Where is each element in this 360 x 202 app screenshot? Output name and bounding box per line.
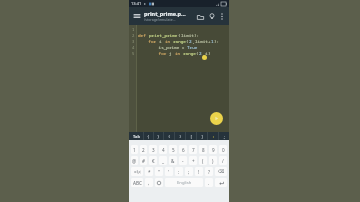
staticText: for xyxy=(138,50,169,56)
button[interactable]: € xyxy=(149,156,157,165)
staticText: , xyxy=(192,38,195,44)
button[interactable]: ⌫ xyxy=(215,167,227,176)
staticText: 5 xyxy=(132,51,135,56)
staticText: i xyxy=(159,38,165,44)
staticText: 2 xyxy=(199,50,202,56)
button[interactable]: # xyxy=(140,156,147,165)
button[interactable]: Hints xyxy=(206,11,217,22)
staticText: 1 xyxy=(211,38,214,44)
button[interactable]: Run xyxy=(210,112,223,125)
button[interactable]: - xyxy=(179,156,187,165)
button[interactable]: 2 xyxy=(140,145,147,154)
staticText: ] xyxy=(201,134,204,139)
button[interactable]: More options xyxy=(217,12,226,21)
button[interactable]: ; xyxy=(185,167,193,176)
staticText: , xyxy=(148,180,150,186)
button[interactable]: @ xyxy=(131,156,138,165)
staticText: ; xyxy=(223,134,226,139)
staticText: 8 xyxy=(202,147,205,153)
button[interactable]: : xyxy=(208,132,218,140)
staticText: limit xyxy=(181,32,194,38)
button[interactable]: ! xyxy=(195,167,203,176)
button[interactable]: ' xyxy=(165,167,173,176)
staticText: + xyxy=(192,158,195,164)
button[interactable]: Enter xyxy=(215,178,227,187)
button[interactable]: ; xyxy=(219,132,229,140)
button[interactable]: [ xyxy=(186,132,196,140)
staticText: range xyxy=(183,50,196,56)
staticText: , xyxy=(202,50,205,56)
staticText: ): xyxy=(214,38,220,44)
button[interactable]: 5 xyxy=(169,145,177,154)
button[interactable]: ( xyxy=(199,156,207,165)
staticText: 2 xyxy=(132,33,135,38)
staticText: @ xyxy=(132,158,137,164)
staticText: + xyxy=(208,38,211,44)
staticText: { xyxy=(147,134,150,139)
button[interactable]: ] xyxy=(197,132,207,140)
button[interactable]: / xyxy=(219,156,227,165)
button[interactable]: ) xyxy=(209,156,217,165)
staticText: English xyxy=(177,180,192,186)
button[interactable]: 1 xyxy=(131,145,138,154)
button[interactable]: 8 xyxy=(199,145,207,154)
staticText: ): xyxy=(194,32,200,38)
staticText: 9 xyxy=(212,147,215,153)
staticText: ; xyxy=(188,169,190,175)
staticText: for xyxy=(138,38,159,44)
staticText: ( xyxy=(168,134,171,139)
staticText: is_prime = xyxy=(138,44,187,50)
staticText: € xyxy=(152,158,155,164)
button[interactable]: : xyxy=(175,167,183,176)
button[interactable]: 0 xyxy=(219,145,227,154)
button[interactable]: _ xyxy=(159,156,167,165)
button[interactable]: . xyxy=(205,178,213,187)
staticText: 6 xyxy=(182,147,185,153)
staticText: i xyxy=(205,50,208,56)
button[interactable]: Emoji xyxy=(155,178,163,187)
button[interactable]: 9 xyxy=(209,145,217,154)
staticText: ) xyxy=(212,158,214,164)
button[interactable]: * xyxy=(145,167,153,176)
staticText: ? xyxy=(208,169,210,175)
staticText: 13:41 xyxy=(131,1,142,6)
staticText: ) xyxy=(179,134,182,139)
button[interactable]: { xyxy=(144,132,153,140)
staticText: print_prime.p… xyxy=(144,10,186,17)
staticText: 7 xyxy=(192,147,195,153)
staticText: range xyxy=(173,38,186,44)
staticText: j xyxy=(169,50,175,56)
button[interactable]: ? xyxy=(205,167,213,176)
button[interactable]: English xyxy=(165,178,203,187)
button[interactable]: } xyxy=(154,132,163,140)
staticText: } xyxy=(157,134,160,139)
staticText: ⌫ xyxy=(218,169,225,174)
button[interactable]: Open navigation menu xyxy=(132,11,142,21)
staticText: True xyxy=(187,44,198,50)
staticText: # xyxy=(142,158,145,164)
staticText: : xyxy=(178,169,180,175)
staticText: ( xyxy=(202,158,204,164)
button[interactable]: Tab xyxy=(129,132,143,140)
button[interactable]: ) xyxy=(175,132,185,140)
button[interactable]: 3 xyxy=(149,145,157,154)
staticText: =\< xyxy=(134,169,141,175)
button[interactable]: " xyxy=(155,167,163,176)
button[interactable]: Open file xyxy=(195,11,206,22)
button[interactable]: 7 xyxy=(189,145,197,154)
button[interactable]: =\< xyxy=(131,167,143,176)
staticText: 0 xyxy=(222,147,225,153)
button[interactable]: ( xyxy=(164,132,174,140)
staticText: ABC xyxy=(133,180,142,186)
staticText: . xyxy=(208,180,210,186)
button[interactable]: ABC xyxy=(131,178,143,187)
button[interactable]: 4 xyxy=(159,145,167,154)
staticText: ! xyxy=(198,169,200,175)
staticText: * xyxy=(148,169,151,175)
button[interactable]: 6 xyxy=(179,145,187,154)
button[interactable]: & xyxy=(169,156,177,165)
staticText: in xyxy=(165,38,173,44)
button[interactable]: + xyxy=(189,156,197,165)
button[interactable]: , xyxy=(145,178,153,187)
staticText: ) xyxy=(208,50,211,56)
